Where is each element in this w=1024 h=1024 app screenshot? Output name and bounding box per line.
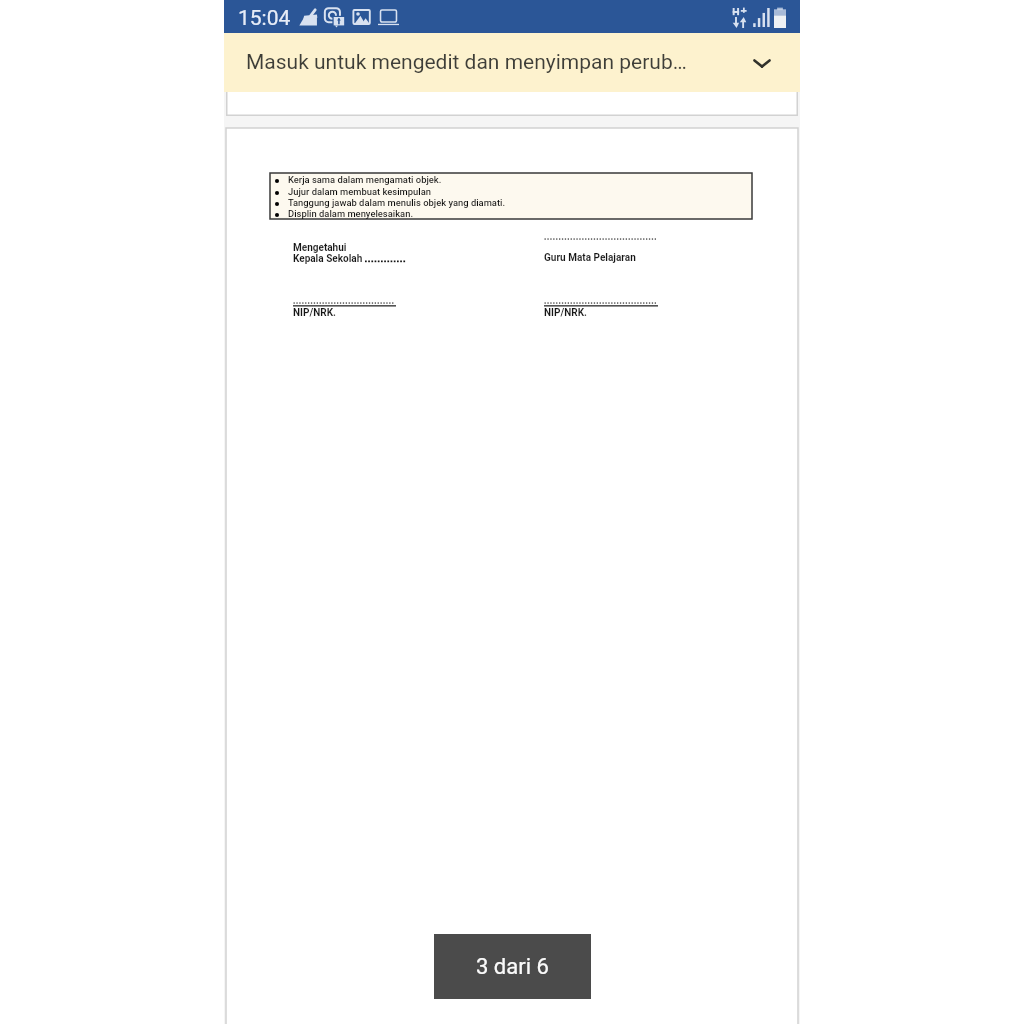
staticText: NIP/NRK. <box>544 307 587 319</box>
button[interactable]: Document page 3 <box>226 128 798 1024</box>
staticText: 3 dari 6 <box>476 954 549 980</box>
staticText: Masuk untuk mengedit dan menyimpan perub… <box>246 50 745 75</box>
staticText: Jujur dalam membuat kesimpulan <box>288 186 431 197</box>
staticText: Kepala Sekolah <box>293 253 363 265</box>
staticText: 15:04 <box>238 6 291 31</box>
button[interactable]: 3 dari 6 <box>434 934 591 999</box>
staticText: Tanggung jawab dalam menulis objek yang … <box>288 197 506 208</box>
button[interactable]: Masuk untuk mengedit dan menyimpan perub… <box>224 33 800 92</box>
staticText: Displin dalam menyelesaikan. <box>288 208 414 219</box>
staticText: Guru Mata Pelajaran <box>544 252 636 264</box>
staticText: NIP/NRK. <box>293 307 336 319</box>
button[interactable]: Expand sign-in banner <box>745 46 779 80</box>
staticText: Kerja sama dalam mengamati objek. <box>288 174 442 185</box>
staticText: Mengetahui <box>293 242 347 254</box>
